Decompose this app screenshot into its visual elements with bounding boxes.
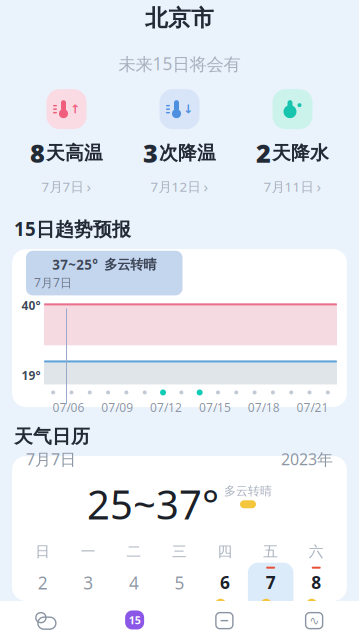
- staticText: 天降水: [272, 141, 329, 164]
- staticText: 未来15日将会有: [118, 52, 240, 75]
- button[interactable]: ↓: [123, 89, 236, 196]
- staticText: 多云转晴: [224, 483, 272, 498]
- staticText: 8: [30, 136, 45, 170]
- staticText: 40°: [21, 297, 40, 313]
- staticText: 一: [81, 543, 96, 561]
- staticText: ↑: [70, 102, 80, 116]
- staticText: 19°: [21, 367, 40, 383]
- staticText: ›: [316, 177, 321, 196]
- button[interactable]: 天气: [0, 609, 90, 638]
- button[interactable]: 2: [20, 563, 66, 620]
- button[interactable]: 8: [293, 563, 339, 621]
- staticText: 8: [311, 571, 321, 594]
- button[interactable]: 7: [248, 563, 293, 621]
- staticText: 15: [129, 613, 141, 627]
- staticText: 多云转晴: [104, 256, 156, 273]
- staticText: 二: [126, 543, 141, 561]
- staticText: ›: [86, 177, 91, 196]
- staticText: 次降温: [159, 141, 216, 164]
- staticText: 五: [263, 543, 278, 561]
- button[interactable]: 5: [157, 563, 202, 620]
- button[interactable]: 6: [202, 563, 248, 621]
- staticText: 07/12: [150, 399, 182, 415]
- staticText: ↓: [183, 102, 193, 116]
- staticText: 25~37°: [87, 477, 219, 531]
- staticText: 7月12日: [150, 178, 200, 195]
- staticText: 2023年: [281, 448, 333, 469]
- staticText: 日: [35, 543, 50, 561]
- staticText: 北京市: [145, 4, 214, 32]
- staticText: 07/18: [248, 399, 280, 415]
- staticText: 三: [172, 543, 187, 561]
- staticText: 37~25°: [52, 256, 98, 273]
- staticText: 5: [174, 571, 184, 594]
- button[interactable]: 3: [66, 563, 111, 620]
- staticText: 2: [38, 571, 48, 594]
- staticText: 2: [256, 136, 271, 170]
- button[interactable]: 日历: [179, 609, 269, 638]
- staticText: 4: [129, 571, 139, 594]
- button[interactable]: ↑: [10, 89, 123, 196]
- button[interactable]: ∿: [269, 609, 359, 638]
- staticText: 07/21: [297, 399, 329, 415]
- staticText: 7月7日: [41, 178, 83, 195]
- staticText: 四: [218, 543, 233, 561]
- staticText: 六: [309, 543, 324, 561]
- staticText: 3: [143, 136, 158, 170]
- staticText: ∿: [309, 614, 319, 627]
- staticText: 7月7日: [26, 448, 76, 469]
- staticText: 天气日历: [14, 425, 90, 448]
- button[interactable]: 2: [236, 89, 349, 196]
- staticText: 7月11日: [263, 178, 313, 195]
- staticText: 07/06: [52, 399, 84, 415]
- staticText: 07/15: [199, 399, 231, 415]
- staticText: 3: [83, 571, 93, 594]
- staticText: ›: [203, 177, 208, 196]
- staticText: 15日趋势预报: [14, 216, 131, 241]
- button[interactable]: 15: [90, 608, 180, 638]
- staticText: 6: [220, 571, 230, 594]
- staticText: 天高温: [46, 141, 103, 164]
- button[interactable]: 4: [111, 563, 157, 620]
- staticText: 7月7日: [34, 274, 72, 290]
- staticText: 7: [266, 571, 276, 594]
- staticText: 07/09: [101, 399, 133, 415]
